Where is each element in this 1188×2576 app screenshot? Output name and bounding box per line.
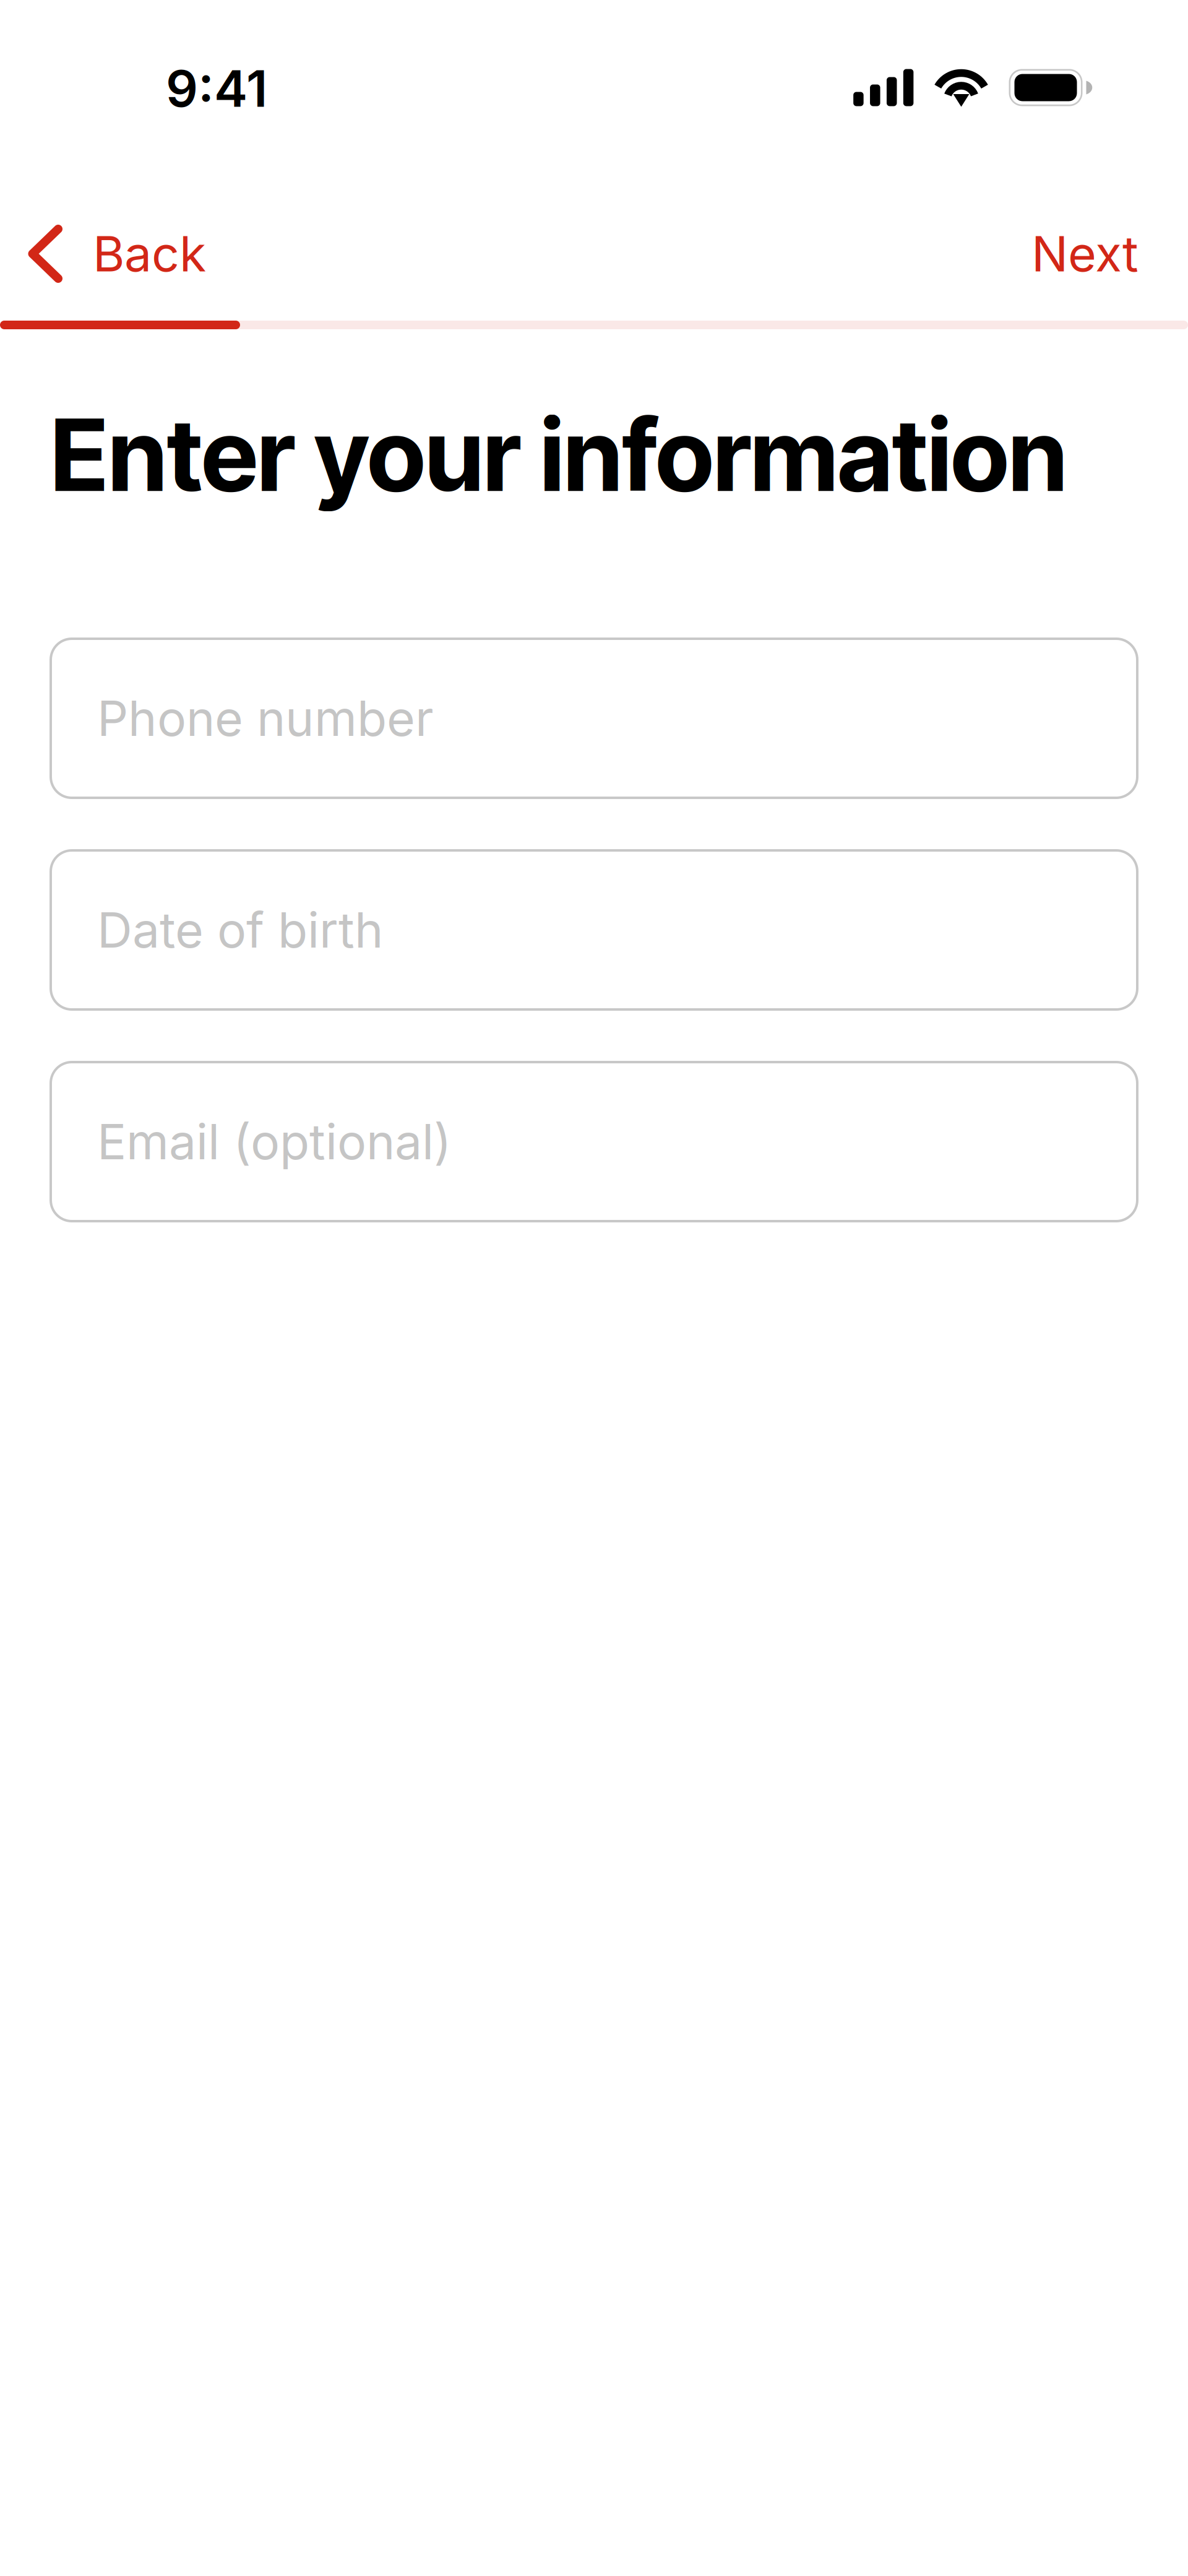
button[interactable]: Email (optional)	[49, 1061, 1138, 1222]
staticText: Phone number	[97, 689, 434, 748]
button[interactable]: Date of birth	[49, 849, 1138, 1011]
staticText: Next	[1031, 224, 1138, 283]
staticText: 9:41	[166, 58, 267, 119]
button[interactable]: Back	[0, 204, 266, 303]
staticText: Date of birth	[97, 900, 384, 959]
button[interactable]: Next	[984, 204, 1188, 303]
staticText: Enter your information	[51, 395, 1067, 515]
staticText: Email (optional)	[97, 1112, 452, 1171]
staticText: Back	[93, 224, 206, 283]
button[interactable]: Phone number	[49, 638, 1138, 799]
